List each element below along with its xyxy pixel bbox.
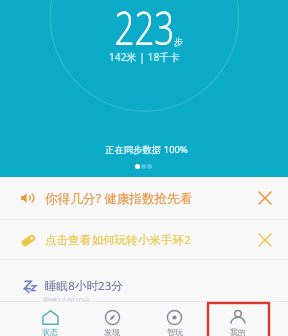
staticText: 142米 | 18千卡 (109, 50, 180, 64)
staticText: 正在同步数据 100% (105, 143, 188, 156)
staticText: 你得几分? 健康指数抢先看 (45, 190, 193, 207)
staticText: 状态 (42, 327, 58, 336)
button[interactable]: Dismiss (242, 220, 287, 259)
staticText: 深睡2小时10分 (43, 296, 91, 306)
staticText: 点击查看如何玩转小米手环2 (45, 232, 191, 248)
staticText: 我的 (230, 327, 246, 336)
button[interactable]: 你得几分? 健康指数抢先看 (0, 177, 288, 219)
staticText: 睡眠8小时23分 (45, 278, 123, 294)
staticText: 步 (174, 36, 183, 47)
button[interactable]: 智玩 (143, 302, 206, 336)
staticText: 223 (115, 0, 174, 59)
button[interactable]: 状态 (19, 302, 81, 336)
button[interactable]: 点击查看如何玩转小米手环2 (0, 220, 288, 259)
button[interactable]: 我的 (206, 302, 269, 336)
button[interactable]: 发现 (81, 302, 143, 336)
button[interactable]: 睡眠8小时23分 (0, 260, 288, 301)
staticText: 发现 (104, 327, 120, 336)
button[interactable]: Dismiss (242, 177, 287, 219)
staticText: 智玩 (167, 327, 183, 336)
